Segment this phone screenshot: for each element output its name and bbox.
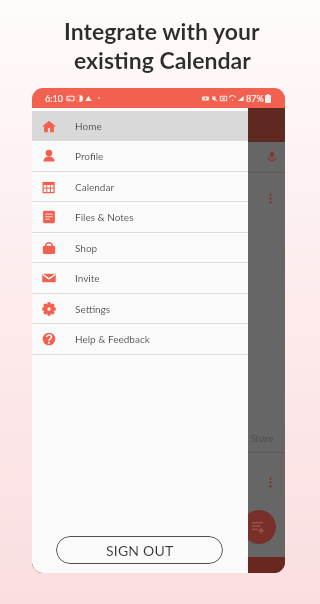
button[interactable]: Create <box>242 510 276 544</box>
button[interactable]: Settings <box>32 294 248 323</box>
staticText: Shop <box>75 242 98 254</box>
staticText: Calendar <box>75 181 115 193</box>
button[interactable]: More options <box>262 190 279 207</box>
button[interactable]: Home <box>32 111 248 140</box>
button[interactable]: Profile <box>32 141 248 171</box>
button[interactable]: More options <box>262 474 279 491</box>
button[interactable]: Help & Feedback <box>32 324 248 354</box>
staticText: Home <box>75 120 102 132</box>
button[interactable]: Voice search <box>262 147 282 167</box>
staticText: Help & Feedback <box>75 333 150 345</box>
staticText: Files & Notes <box>75 211 134 223</box>
staticText: SIGN OUT <box>106 542 174 559</box>
button[interactable]: Files & Notes <box>32 202 248 232</box>
staticText: Share <box>251 433 274 444</box>
staticText: existing Calendar <box>74 46 251 74</box>
staticText: Integrate with your <box>64 17 260 45</box>
button[interactable]: Shop <box>32 233 248 262</box>
staticText: Settings <box>75 303 111 315</box>
button[interactable]: Invite <box>32 263 248 293</box>
button[interactable]: Calendar <box>32 172 248 201</box>
staticText: Profile <box>75 150 104 162</box>
staticText: Invite <box>75 272 100 284</box>
button[interactable]: SIGN OUT <box>56 536 223 564</box>
staticText: 87% <box>246 93 264 104</box>
button[interactable]: Share <box>251 433 274 444</box>
staticText: 6:10 <box>45 93 63 104</box>
